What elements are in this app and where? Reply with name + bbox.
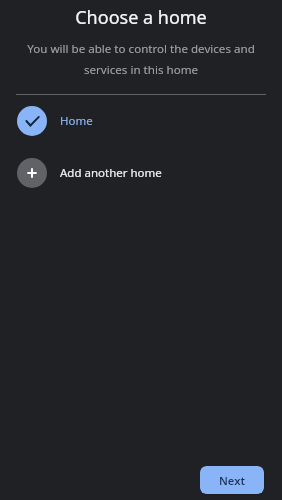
staticText: Choose a home: [0, 5, 282, 30]
button[interactable]: Selected home: [0, 95, 282, 147]
staticText: You will be able to control the devices …: [18, 41, 264, 77]
button[interactable]: Add home: [0, 147, 282, 199]
staticText: Add another home: [60, 165, 162, 181]
other: Add home: [17, 158, 47, 188]
button[interactable]: Next: [200, 466, 264, 494]
staticText: Home: [60, 113, 93, 129]
staticText: Next: [219, 473, 245, 488]
other: Selected home: [17, 106, 47, 136]
